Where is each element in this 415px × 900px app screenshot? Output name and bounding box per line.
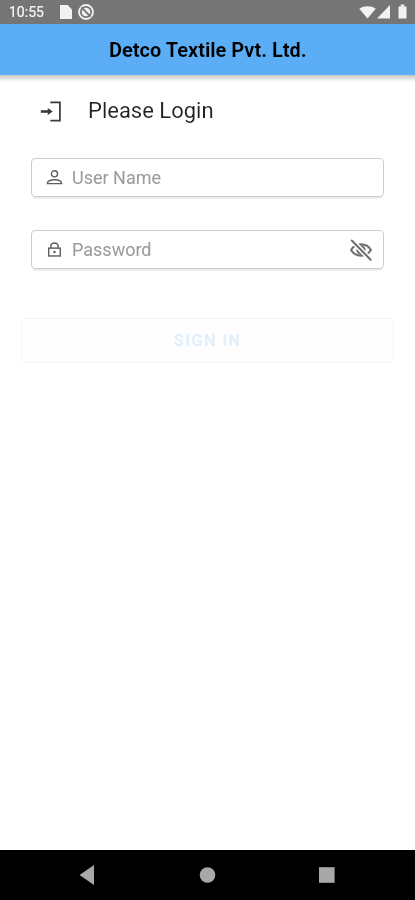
button[interactable]: SIGN IN xyxy=(21,318,394,363)
staticText: Detco Textile Pvt. Ltd. xyxy=(109,38,307,61)
button[interactable]: Recent apps xyxy=(277,850,415,900)
staticText: Password xyxy=(72,239,152,260)
staticText: 10:55 xyxy=(9,4,44,20)
button[interactable]: Home xyxy=(139,850,277,900)
staticText: Please Login xyxy=(88,98,214,124)
button[interactable]: Password xyxy=(31,230,384,269)
other: Login xyxy=(39,100,62,123)
staticText: SIGN IN xyxy=(174,331,242,350)
button[interactable]: Back xyxy=(0,850,139,900)
button[interactable]: User Name xyxy=(31,158,384,197)
button[interactable]: Show password xyxy=(342,231,380,269)
staticText: User Name xyxy=(72,167,162,188)
